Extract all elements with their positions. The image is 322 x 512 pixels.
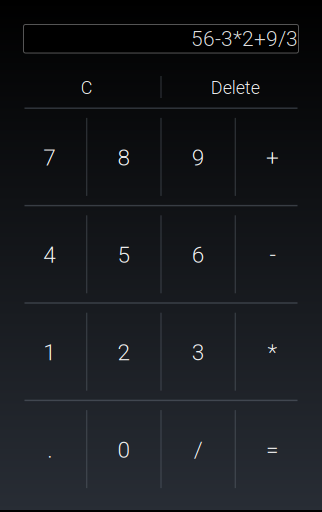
staticText: 3 [192,339,205,366]
button[interactable]: 1 [13,304,86,400]
staticText: . [47,437,52,463]
staticText: 2 [117,339,130,366]
button[interactable]: 7 [13,109,86,205]
staticText: / [194,437,203,463]
staticText: + [266,144,279,171]
button[interactable]: 9 [161,109,235,205]
staticText: 6 [192,242,205,268]
staticText: 4 [43,242,56,268]
button[interactable]: C [13,66,160,107]
button[interactable]: 5 [87,206,160,302]
staticText: 56-3*2+9/3 [191,26,298,51]
staticText: 9 [192,144,205,171]
button[interactable]: * [236,304,309,400]
button[interactable]: 4 [13,206,86,302]
button[interactable]: = [236,401,309,497]
staticText: 7 [43,144,56,171]
button[interactable]: + [236,109,309,205]
button[interactable]: 0 [87,401,160,497]
staticText: Delete [211,77,260,98]
button[interactable]: / [161,401,235,497]
staticText: C [81,77,93,98]
staticText: 8 [117,144,130,171]
staticText: 1 [43,339,56,366]
button[interactable]: 8 [87,109,160,205]
button[interactable]: 2 [87,304,160,400]
button[interactable]: 6 [161,206,235,302]
button[interactable]: . [13,401,86,497]
button[interactable]: Delete [161,66,309,107]
staticText: 5 [117,242,130,268]
staticText: * [267,339,277,366]
staticText: - [269,242,275,268]
button[interactable]: 3 [161,304,235,400]
staticText: = [266,437,279,463]
staticText: 0 [117,437,130,463]
button[interactable]: - [236,206,309,302]
